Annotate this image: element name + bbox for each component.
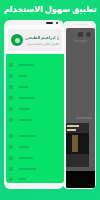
staticText: القران الكريم كاملا بصوت	[27, 42, 59, 46]
button[interactable]	[9, 152, 61, 163]
button[interactable]	[9, 174, 61, 183]
button[interactable]	[9, 130, 61, 141]
button[interactable]	[9, 70, 61, 81]
button[interactable]: القارئ ابراهيم الطبقي	[8, 29, 62, 51]
button[interactable]	[9, 141, 61, 152]
button[interactable]	[9, 81, 61, 92]
button[interactable]	[9, 92, 61, 103]
staticText: تطبيق سهول الاستخدام	[4, 3, 97, 14]
button[interactable]	[9, 114, 61, 125]
button[interactable]	[9, 103, 61, 114]
button[interactable]: Search	[86, 32, 91, 37]
staticText: القارئ ابراهيم الطبقي	[25, 35, 59, 40]
button[interactable]	[9, 163, 61, 174]
button[interactable]	[9, 59, 61, 70]
